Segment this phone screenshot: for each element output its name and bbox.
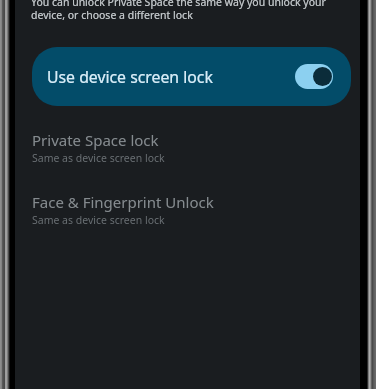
staticText: Face & Fingerprint Unlock: [32, 192, 214, 212]
button[interactable]: Use device screen lock: [32, 47, 351, 106]
staticText: You can unlock Private Space the same wa…: [31, 0, 333, 22]
button[interactable]: Use device screen lock, on: [295, 64, 333, 89]
button[interactable]: Private Space lock: [15, 128, 360, 176]
staticText: Use device screen lock: [47, 66, 213, 88]
button[interactable]: Face & Fingerprint Unlock: [15, 190, 360, 238]
staticText: Same as device screen lock: [32, 151, 165, 165]
staticText: Private Space lock: [32, 130, 159, 150]
staticText: Same as device screen lock: [32, 213, 165, 227]
